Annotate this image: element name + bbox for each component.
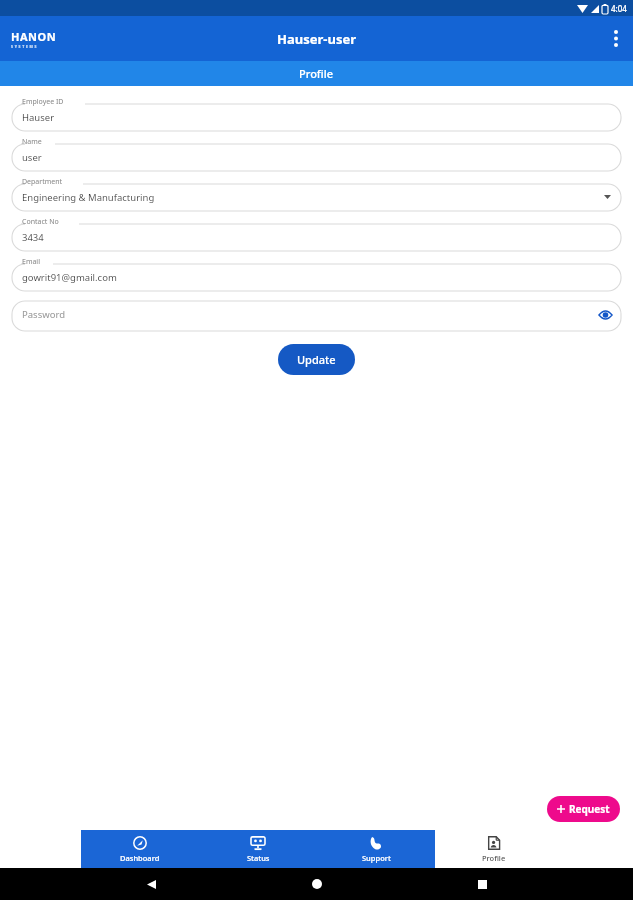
staticText: Engineering & Manufacturing <box>22 191 155 204</box>
staticText: Support <box>362 853 391 863</box>
staticText: 4:04 <box>611 3 627 14</box>
staticText: Profile <box>299 66 334 81</box>
button[interactable]: Request <box>547 796 620 822</box>
staticText: Update <box>297 352 336 367</box>
staticText: gowrit91@gmail.com <box>22 271 117 284</box>
button[interactable]: Dashboard <box>81 830 199 868</box>
button[interactable]: Department <box>12 178 621 211</box>
staticText: HANON <box>11 29 57 44</box>
staticText: Status <box>247 853 270 863</box>
staticText: Request <box>569 802 610 816</box>
button[interactable]: Password <box>12 298 621 331</box>
staticText: S Y S T E M S <box>11 44 37 49</box>
staticText: Hauser-user <box>277 30 356 48</box>
button[interactable]: Status <box>199 830 317 868</box>
button[interactable]: Support <box>317 830 435 868</box>
staticText: user <box>22 151 42 164</box>
button[interactable]: Contact No <box>12 218 621 251</box>
staticText: Hauser <box>22 111 55 124</box>
staticText: Name <box>22 137 42 147</box>
staticText: Password <box>22 308 65 321</box>
button[interactable]: Back <box>136 869 166 899</box>
staticText: Email <box>22 257 40 267</box>
staticText: Dashboard <box>120 853 160 863</box>
button[interactable]: Name <box>12 138 621 171</box>
button[interactable]: Home <box>302 869 332 899</box>
staticText: Department <box>22 177 63 187</box>
button[interactable]: Update <box>278 344 355 375</box>
staticText: Profile <box>482 853 506 863</box>
button[interactable]: Profile <box>0 61 633 86</box>
button[interactable]: Email <box>12 258 621 291</box>
button[interactable]: Employee ID <box>12 98 621 131</box>
button[interactable]: Show password <box>595 305 615 325</box>
button[interactable]: Profile <box>435 830 553 868</box>
button[interactable]: More options <box>599 16 633 61</box>
staticText: Employee ID <box>22 97 64 107</box>
staticText: Contact No <box>22 217 59 227</box>
button[interactable]: Recent apps <box>467 869 497 899</box>
staticText: 3434 <box>22 231 44 244</box>
